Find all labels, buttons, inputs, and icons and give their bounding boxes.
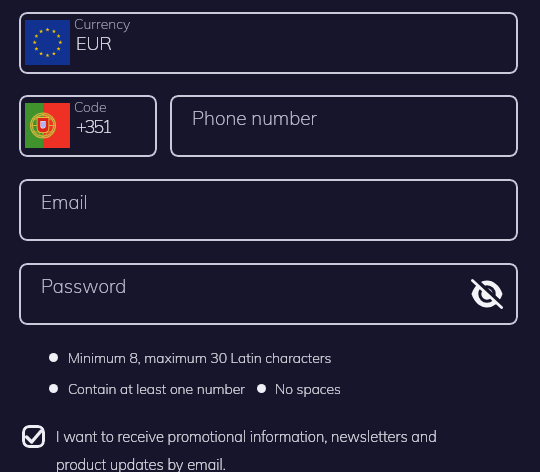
button[interactable]: Password bbox=[19, 263, 518, 325]
staticText: EUR bbox=[76, 32, 112, 55]
button[interactable]: Hide password bbox=[466, 273, 508, 315]
button[interactable]: Email bbox=[19, 179, 518, 241]
staticText: +351 bbox=[76, 115, 111, 138]
staticText: I want to receive promotional informatio… bbox=[56, 427, 448, 472]
button[interactable]: Phone number bbox=[170, 95, 518, 157]
button[interactable]: Currency bbox=[19, 12, 518, 74]
staticText: Minimum 8, maximum 30 Latin characters bbox=[68, 349, 332, 367]
button[interactable]: Code bbox=[19, 95, 157, 157]
staticText: Phone number bbox=[192, 106, 317, 130]
staticText: Currency bbox=[74, 15, 131, 33]
staticText: Code bbox=[74, 98, 107, 116]
staticText: Password bbox=[41, 274, 127, 298]
staticText: Contain at least one number bbox=[68, 380, 245, 398]
staticText: Email bbox=[41, 190, 88, 214]
button[interactable]: I want to receive promotional informatio… bbox=[19, 421, 509, 472]
staticText: No spaces bbox=[275, 380, 341, 398]
